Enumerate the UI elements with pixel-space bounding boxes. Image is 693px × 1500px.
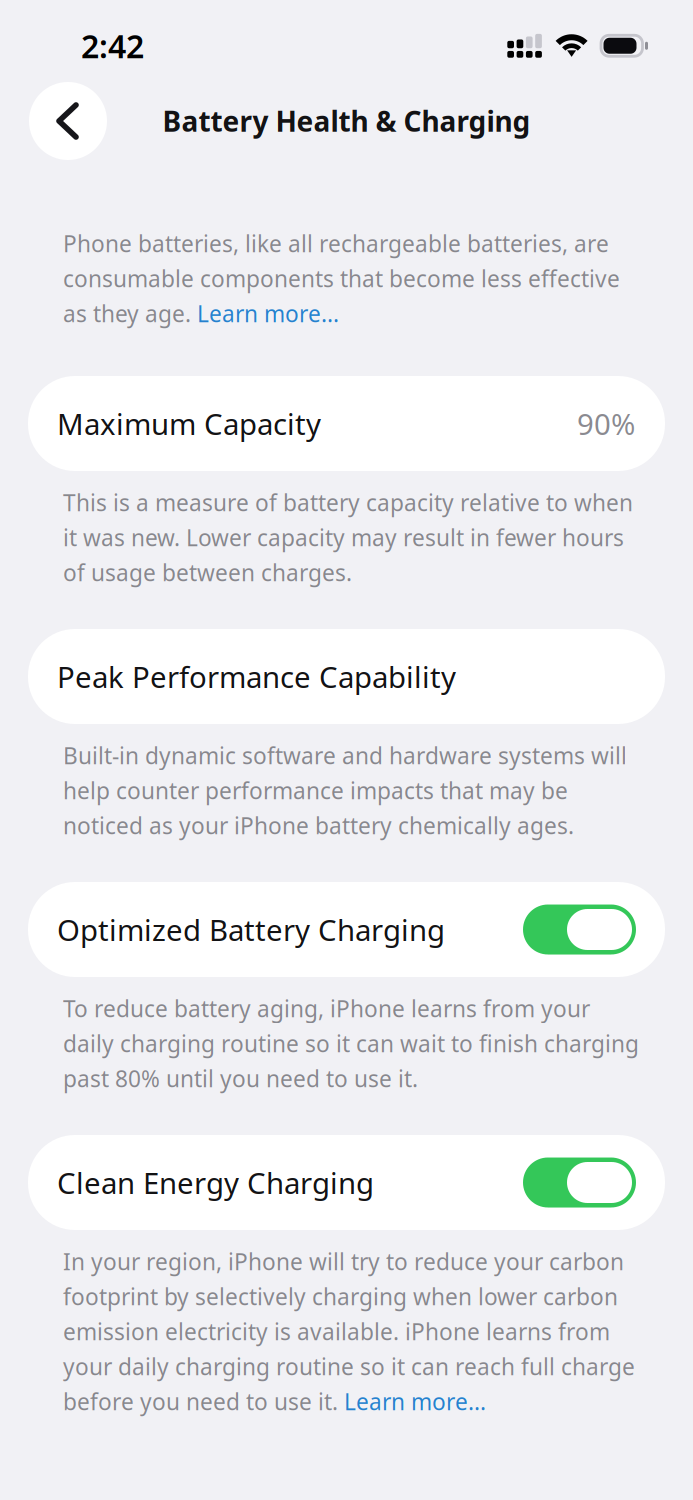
staticText: 2:42 [81,24,144,67]
staticText: noticed as your iPhone battery chemicall… [63,810,574,840]
staticText: as they age. [63,298,197,328]
button[interactable]: Clean Energy Charging [28,1135,665,1230]
staticText: Battery Health & Charging [162,102,530,140]
staticText: of usage between charges. [63,557,352,587]
staticText: This is a measure of battery capacity re… [63,487,633,517]
staticText: Learn more... [197,298,339,328]
staticText: Clean Energy Charging [57,1163,374,1202]
staticText: In your region, iPhone will try to reduc… [63,1246,624,1276]
staticText: Phone batteries, like all rechargeable b… [63,228,609,258]
button[interactable]: Learn more... [344,1386,486,1416]
button[interactable]: Back [29,82,107,160]
staticText: past 80% until you need to use it. [63,1063,418,1093]
button[interactable]: Learn more... [197,298,339,328]
staticText: footprint by selectively charging when l… [63,1281,618,1311]
staticText: emission electricity is available. iPhon… [63,1316,610,1346]
staticText: daily charging routine so it can wait to… [63,1028,639,1058]
staticText: before you need to use it. [63,1386,344,1416]
staticText: Built-in dynamic software and hardware s… [63,740,627,770]
staticText: Maximum Capacity [57,404,321,443]
button[interactable]: Optimized Battery Charging [28,882,665,977]
staticText: consumable components that become less e… [63,263,620,293]
button[interactable]: Peak Performance Capability [28,629,665,724]
staticText: Optimized Battery Charging [57,910,445,949]
staticText: Peak Performance Capability [57,657,456,696]
button[interactable]: Maximum Capacity [28,376,665,471]
staticText: your daily charging routine so it can re… [63,1351,635,1381]
staticText: To reduce battery aging, iPhone learns f… [63,993,590,1023]
staticText: help counter performance impacts that ma… [63,775,568,805]
staticText: Learn more... [344,1386,486,1416]
staticText: it was new. Lower capacity may result in… [63,522,624,552]
staticText: 90% [577,404,635,443]
